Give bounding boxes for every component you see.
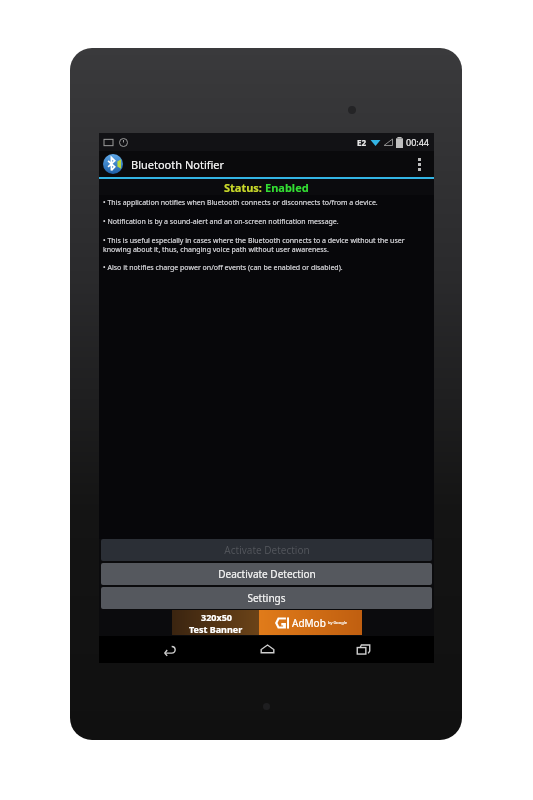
button[interactable]: Activate Detection: [101, 539, 432, 561]
button[interactable]: More options: [408, 152, 430, 176]
staticText: AdMob: [292, 616, 326, 630]
staticText: Deactivate Detection: [218, 567, 316, 581]
staticText: Test Banner: [189, 623, 243, 635]
staticText: 00:44: [406, 136, 430, 148]
staticText: • Also it notifies charge power on/off e…: [103, 263, 343, 273]
staticText: Bluetooth Notifier: [131, 157, 225, 172]
staticText: Activate Detection: [224, 543, 310, 557]
button[interactable]: Recent apps: [338, 636, 388, 663]
staticText: Status:: [224, 180, 265, 195]
staticText: • Notification is by a sound-alert and a…: [103, 217, 339, 227]
staticText: Settings: [247, 591, 286, 605]
staticText: by Google: [328, 620, 347, 625]
staticText: 320x50: [201, 611, 232, 623]
staticText: • This application notifies when Bluetoo…: [103, 198, 378, 208]
button[interactable]: Settings: [101, 587, 432, 609]
button[interactable]: 320x50: [172, 610, 362, 635]
button[interactable]: Home: [242, 636, 292, 663]
button[interactable]: Deactivate Detection: [101, 563, 432, 585]
staticText: Enabled: [265, 180, 309, 195]
staticText: E2: [357, 137, 367, 148]
button[interactable]: Back: [145, 636, 195, 663]
staticText: • This is useful especially in cases whe…: [103, 236, 430, 254]
